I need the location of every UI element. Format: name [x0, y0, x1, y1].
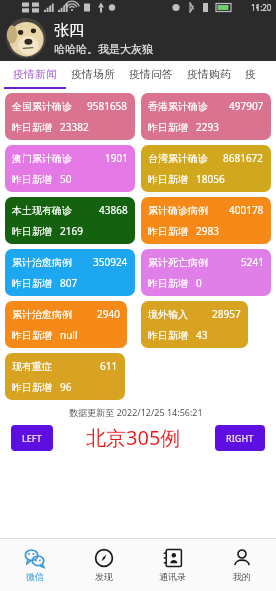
staticText: 疫情问答	[129, 67, 173, 81]
staticText: LEFT	[22, 432, 42, 444]
button[interactable]: 发现	[69, 539, 138, 591]
staticText: 400178	[229, 203, 264, 217]
staticText: 昨日新增	[148, 225, 188, 238]
button[interactable]: 全国累计确诊	[5, 93, 135, 140]
button[interactable]: 疫	[238, 64, 263, 84]
button[interactable]: 我的	[207, 539, 276, 591]
staticText: 数据更新至 2022/12/25 14:56:21	[5, 406, 267, 418]
staticText: 昨日新增	[12, 329, 52, 342]
staticText: 昨日新增	[148, 173, 188, 186]
staticText: 18056	[196, 172, 225, 186]
staticText: 5241	[241, 255, 264, 269]
button[interactable]: 本土现有确诊	[5, 197, 135, 244]
staticText: 疫情场所	[71, 67, 115, 81]
staticText: 昨日新增	[148, 329, 188, 342]
staticText: 境外输入	[148, 308, 188, 321]
staticText: 9581658	[87, 99, 128, 113]
staticText: 96	[60, 380, 72, 394]
button[interactable]: 疫情场所	[64, 64, 122, 84]
staticText: 北京305例	[86, 424, 181, 451]
staticText: 台湾累计确诊	[148, 152, 208, 165]
staticText: 发现	[95, 571, 113, 582]
button[interactable]: 累计确诊病例	[141, 197, 271, 244]
staticText: 43868	[99, 203, 128, 217]
staticText: 350924	[93, 255, 128, 269]
button[interactable]: 澳门累计确诊	[5, 145, 135, 192]
staticText: 611	[100, 359, 118, 373]
staticText: 28957	[212, 307, 241, 321]
button[interactable]: 疫情问答	[122, 64, 180, 84]
staticText: 疫	[245, 67, 256, 81]
staticText: 昨日新增	[12, 277, 52, 290]
button[interactable]: 微信	[0, 539, 69, 591]
staticText: 微信	[26, 571, 44, 582]
staticText: 本土现有确诊	[12, 204, 72, 217]
button[interactable]: 台湾累计确诊	[141, 145, 271, 192]
staticText: 我的	[233, 571, 251, 582]
button[interactable]: 累计死亡病例	[141, 249, 271, 296]
staticText: 11:20	[251, 2, 272, 13]
staticText: 昨日新增	[148, 277, 188, 290]
staticText: 2940	[97, 307, 120, 321]
staticText: 8681672	[223, 151, 264, 165]
staticText: 香港累计确诊	[148, 100, 208, 113]
staticText: 疫情新闻	[13, 67, 57, 81]
button[interactable]: 疫情新闻	[6, 64, 64, 84]
button[interactable]: 现有重症	[5, 353, 125, 400]
staticText: RIGHT	[226, 432, 254, 444]
staticText: 疫情购药	[187, 67, 231, 81]
staticText: 累计确诊病例	[148, 204, 208, 217]
staticText: 哈哈哈。我是大灰狼	[54, 42, 153, 56]
staticText: 澳门累计确诊	[12, 152, 72, 165]
staticText: 累计治愈病例	[12, 256, 72, 269]
staticText: 2293	[196, 120, 219, 134]
staticText: null	[60, 328, 78, 342]
staticText: 张四	[54, 21, 84, 40]
staticText: 昨日新增	[12, 225, 52, 238]
staticText: 2169	[60, 224, 83, 238]
staticText: 累计死亡病例	[148, 256, 208, 269]
staticText: 50	[60, 172, 72, 186]
staticText: 1901	[105, 151, 128, 165]
other: Avatar	[6, 18, 46, 58]
button[interactable]: 香港累计确诊	[141, 93, 271, 140]
staticText: 现有重症	[12, 360, 52, 373]
button[interactable]: 通讯录	[138, 539, 207, 591]
staticText: 昨日新增	[12, 121, 52, 134]
staticText: 全国累计确诊	[12, 100, 72, 113]
button[interactable]: 境外输入	[141, 301, 248, 348]
staticText: 807	[60, 276, 78, 290]
staticText: 43	[196, 328, 208, 342]
staticText: 累计治愈病例	[12, 308, 72, 321]
staticText: 23382	[60, 120, 89, 134]
staticText: 2983	[196, 224, 219, 238]
staticText: 昨日新增	[12, 381, 52, 394]
staticText: 0	[196, 276, 202, 290]
button[interactable]: 疫情购药	[180, 64, 238, 84]
staticText: 497907	[229, 99, 264, 113]
button[interactable]: LEFT	[11, 425, 53, 451]
button[interactable]: RIGHT	[215, 425, 265, 451]
staticText: 昨日新增	[148, 121, 188, 134]
button[interactable]: 累计治愈病例	[5, 249, 135, 296]
button[interactable]: Avatar	[0, 15, 276, 61]
button[interactable]: 累计治愈病例	[5, 301, 127, 348]
staticText: 昨日新增	[12, 173, 52, 186]
staticText: 通讯录	[159, 571, 186, 582]
